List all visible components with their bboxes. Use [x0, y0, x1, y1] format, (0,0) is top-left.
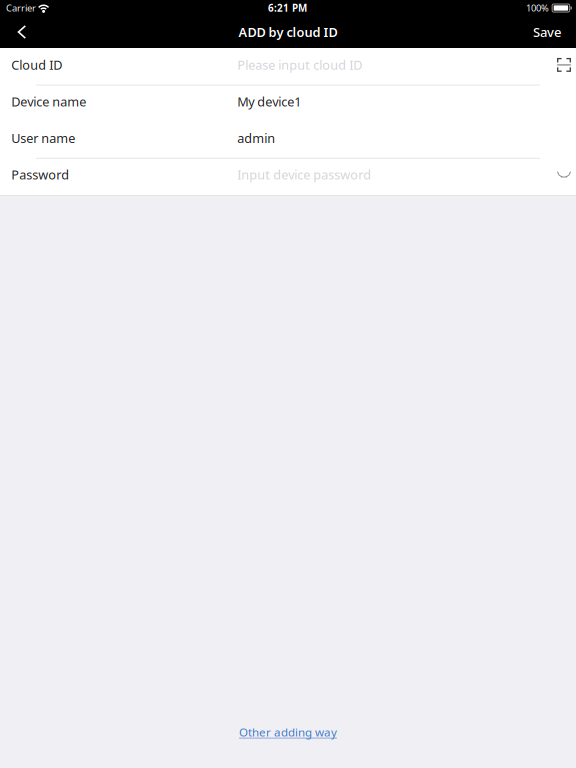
staticText: My device1	[237, 93, 301, 110]
staticText: Device name	[11, 93, 86, 110]
button[interactable]: Save	[519, 16, 576, 48]
staticText: User name	[11, 129, 75, 147]
button[interactable]: Password	[0, 158, 552, 194]
staticText: admin	[237, 129, 275, 147]
staticText: ADD by cloud ID	[238, 23, 337, 41]
button[interactable]: Scan QR code	[552, 48, 576, 84]
button[interactable]: Device name	[0, 85, 552, 121]
staticText: Cloud ID	[11, 56, 62, 74]
button[interactable]: User name	[0, 121, 552, 158]
button[interactable]: Back	[0, 16, 44, 48]
staticText: Other adding way	[239, 724, 337, 740]
button[interactable]: Show password	[552, 158, 576, 194]
staticText: Please input cloud ID	[237, 56, 362, 74]
button[interactable]: Cloud ID	[0, 48, 552, 85]
staticText: Input device password	[237, 166, 371, 183]
staticText: Password	[11, 166, 69, 183]
staticText: Save	[533, 23, 562, 41]
staticText: Carrier	[6, 2, 36, 14]
button[interactable]: Other adding way	[229, 718, 347, 746]
staticText: 6:21 PM	[268, 1, 307, 15]
staticText: 100%	[526, 2, 549, 14]
